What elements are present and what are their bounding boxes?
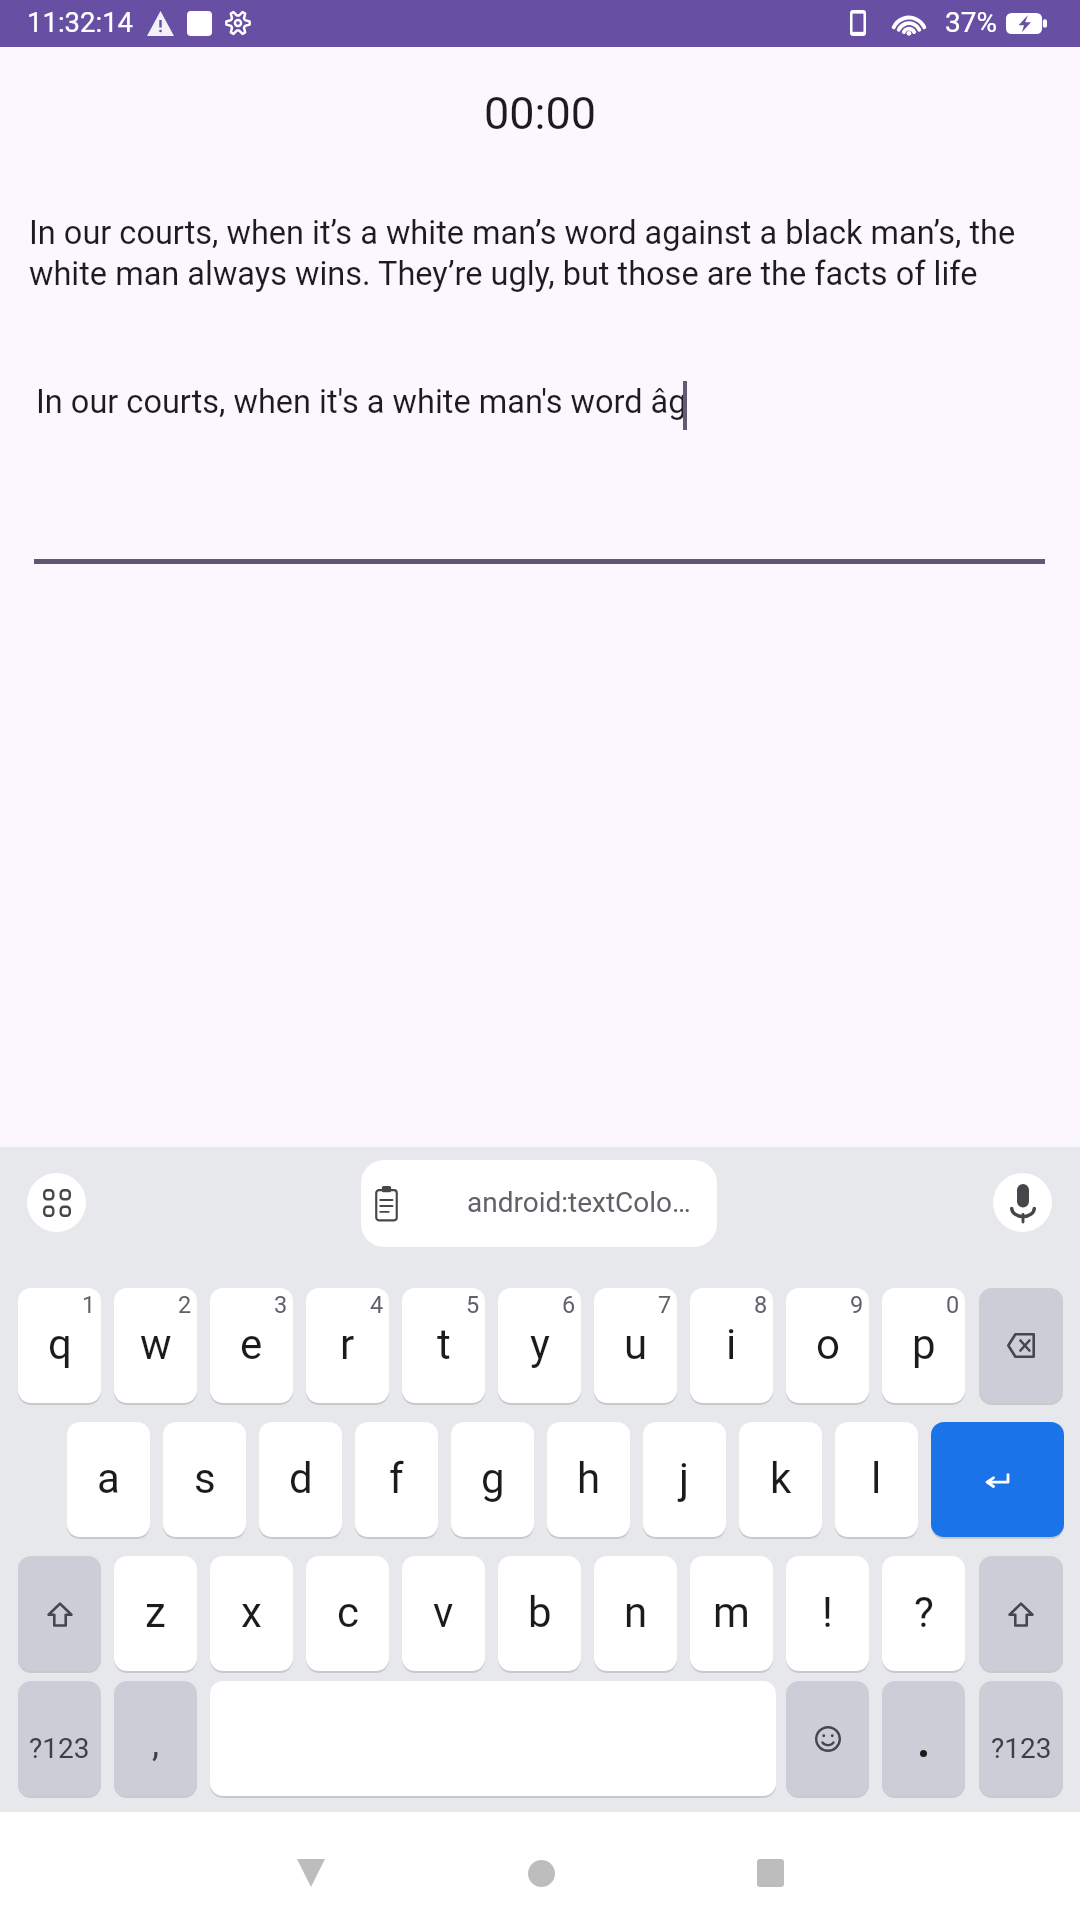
button[interactable]: Recent apps: [722, 1822, 818, 1920]
button[interactable]: Shift: [979, 1556, 1063, 1671]
staticText: q: [48, 1320, 72, 1369]
staticText: g: [481, 1454, 505, 1503]
staticText: ?: [914, 1588, 934, 1637]
button[interactable]: Back: [263, 1822, 359, 1920]
staticText: 7: [658, 1291, 672, 1319]
button[interactable]: ?123: [18, 1681, 101, 1796]
staticText: a: [97, 1454, 120, 1503]
staticText: 11:32:14: [27, 6, 134, 38]
staticText: r: [340, 1320, 355, 1369]
staticText: b: [528, 1588, 552, 1637]
button[interactable]: android:textColo…: [361, 1160, 717, 1247]
button[interactable]: s: [163, 1422, 246, 1537]
button[interactable]: ?123: [979, 1681, 1063, 1796]
button[interactable]: k: [739, 1422, 822, 1537]
staticText: ?123: [29, 1732, 90, 1765]
button[interactable]: j: [643, 1422, 726, 1537]
button[interactable]: Enter: [931, 1422, 1064, 1537]
staticText: o: [816, 1320, 840, 1369]
staticText: 00:00: [0, 87, 1080, 140]
button[interactable]: !: [786, 1556, 869, 1671]
button[interactable]: g: [451, 1422, 534, 1537]
staticText: p: [912, 1320, 936, 1369]
staticText: 9: [850, 1291, 864, 1319]
button[interactable]: ,: [114, 1681, 197, 1796]
button[interactable]: c: [306, 1556, 389, 1671]
button[interactable]: ?: [882, 1556, 965, 1671]
staticText: s: [194, 1454, 216, 1503]
button[interactable]: x: [210, 1556, 293, 1671]
button[interactable]: 5: [402, 1288, 485, 1403]
staticText: 1: [82, 1291, 96, 1319]
button[interactable]: 0: [882, 1288, 965, 1403]
staticText: e: [240, 1320, 263, 1369]
staticText: 3: [274, 1291, 288, 1319]
button[interactable]: 7: [594, 1288, 677, 1403]
button[interactable]: Home: [493, 1822, 589, 1920]
button[interactable]: n: [594, 1556, 677, 1671]
staticText: 0: [946, 1291, 960, 1319]
button[interactable]: 9: [786, 1288, 869, 1403]
button[interactable]: 2: [114, 1288, 197, 1403]
button[interactable]: v: [402, 1556, 485, 1671]
button[interactable]: a: [67, 1422, 150, 1537]
staticText: d: [289, 1454, 313, 1503]
button[interactable]: Emoji: [786, 1681, 869, 1796]
staticText: 5: [466, 1291, 480, 1319]
staticText: 8: [754, 1291, 768, 1319]
staticText: h: [577, 1454, 601, 1503]
staticText: In our courts, when it's a white man's w…: [36, 383, 687, 421]
button[interactable]: z: [114, 1556, 197, 1671]
button[interactable]: 6: [498, 1288, 581, 1403]
button[interactable]: 4: [306, 1288, 389, 1403]
button[interactable]: h: [547, 1422, 630, 1537]
staticText: ,: [152, 1723, 160, 1765]
button[interactable]: Period: [882, 1681, 965, 1796]
button[interactable]: l: [835, 1422, 918, 1537]
staticText: j: [679, 1454, 690, 1503]
staticText: w: [140, 1320, 172, 1369]
staticText: !: [822, 1588, 833, 1637]
button[interactable]: Apps: [27, 1173, 86, 1232]
staticText: x: [241, 1588, 262, 1637]
staticText: l: [871, 1454, 882, 1503]
button[interactable]: d: [259, 1422, 342, 1537]
button[interactable]: Shift: [18, 1556, 101, 1671]
staticText: t: [437, 1320, 451, 1369]
staticText: z: [145, 1588, 166, 1637]
staticText: 37%: [945, 6, 997, 39]
button[interactable]: Backspace: [979, 1288, 1063, 1403]
staticText: ?123: [991, 1732, 1052, 1765]
button[interactable]: 3: [210, 1288, 293, 1403]
button[interactable]: 8: [690, 1288, 773, 1403]
staticText: 6: [562, 1291, 576, 1319]
staticText: n: [624, 1588, 648, 1637]
staticText: k: [770, 1454, 792, 1503]
staticText: In our courts, when it’s a white man’s w…: [29, 214, 1039, 293]
staticText: 4: [370, 1291, 384, 1319]
button[interactable]: 1: [18, 1288, 101, 1403]
button[interactable]: f: [355, 1422, 438, 1537]
staticText: c: [337, 1588, 359, 1637]
staticText: m: [713, 1588, 750, 1637]
staticText: u: [624, 1320, 648, 1369]
staticText: 2: [178, 1291, 192, 1319]
staticText: y: [530, 1320, 550, 1369]
staticText: i: [726, 1320, 737, 1369]
button[interactable]: Voice input: [993, 1173, 1052, 1232]
staticText: v: [433, 1588, 454, 1637]
button[interactable]: b: [498, 1556, 581, 1671]
button[interactable]: m: [690, 1556, 773, 1671]
staticText: android:textColo…: [467, 1186, 691, 1219]
staticText: f: [389, 1454, 404, 1503]
